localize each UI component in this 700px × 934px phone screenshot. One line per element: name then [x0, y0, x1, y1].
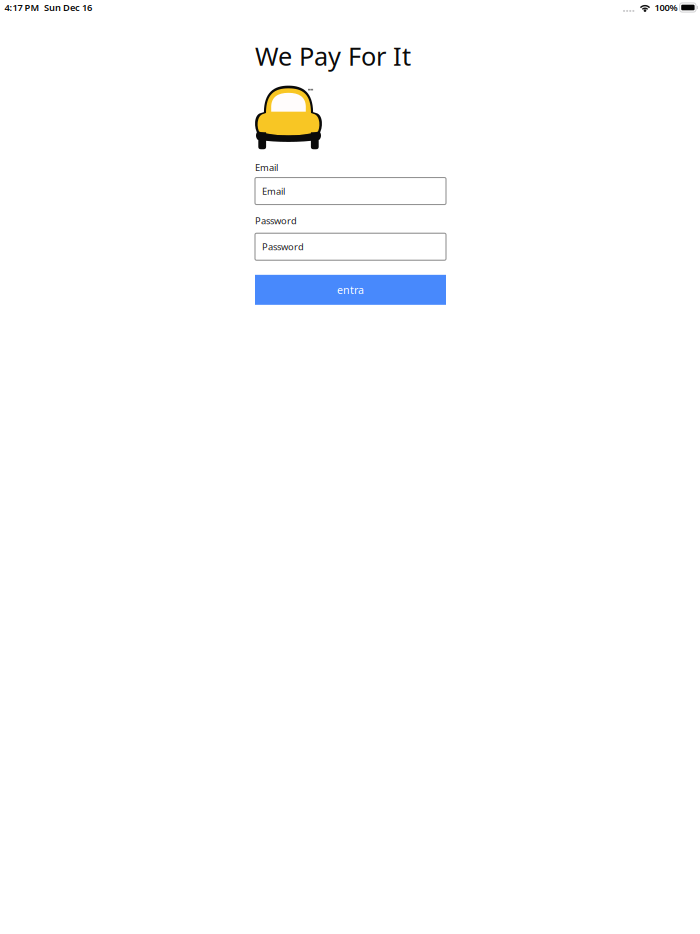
button[interactable]: Password	[255, 233, 446, 260]
staticText: entra	[337, 283, 364, 297]
staticText: 100%	[654, 1, 677, 14]
button[interactable]: entra	[255, 275, 446, 305]
staticText: Email	[262, 185, 285, 197]
staticText: Email	[255, 161, 278, 174]
staticText: We Pay For It	[255, 39, 411, 73]
staticText: Password	[255, 214, 297, 227]
staticText: 4:17 PM	[4, 1, 39, 14]
button[interactable]: Email	[255, 177, 446, 204]
staticText: Sun Dec 16	[44, 1, 92, 14]
staticText: Password	[262, 240, 304, 253]
